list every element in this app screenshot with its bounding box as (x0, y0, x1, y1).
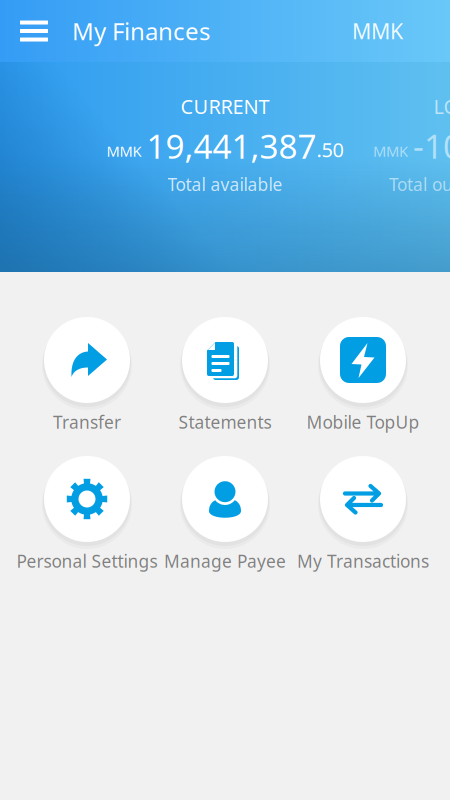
button[interactable]: Transfer (18, 320, 156, 434)
button[interactable]: Manage Payee (156, 459, 294, 573)
button[interactable]: Personal Settings (18, 459, 156, 573)
staticText: Total outstanding (389, 173, 450, 196)
staticText: MMK (106, 141, 141, 161)
staticText: -100,000 (413, 124, 450, 168)
staticText: My Transactions (297, 549, 429, 572)
staticText: Transfer (53, 410, 121, 433)
staticText: 19,441,387 (146, 124, 316, 168)
button[interactable]: Statements (156, 320, 294, 434)
staticText: Personal Settings (16, 549, 157, 572)
staticText: Mobile TopUp (306, 410, 419, 433)
button[interactable]: MMK (338, 0, 450, 62)
staticText: .50 (316, 136, 343, 163)
button[interactable]: My Transactions (294, 459, 432, 573)
staticText: MMK (352, 17, 403, 45)
staticText: My Finances (72, 15, 210, 47)
button[interactable]: Menu (0, 0, 72, 62)
staticText: LOAN (433, 93, 450, 120)
staticText: Total available (167, 173, 282, 196)
staticText: Manage Payee (164, 549, 286, 572)
staticText: CURRENT (180, 93, 269, 120)
button[interactable]: Mobile TopUp (294, 320, 432, 434)
staticText: MMK (373, 141, 408, 161)
staticText: Statements (178, 410, 271, 433)
